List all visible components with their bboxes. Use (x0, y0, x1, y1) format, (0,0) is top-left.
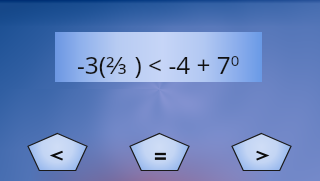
button[interactable]: Less than (28, 133, 87, 171)
button[interactable]: Greater than (232, 133, 291, 171)
button[interactable]: Equals (130, 133, 189, 171)
staticText: -3(⅔ ) < -4 + 70 (77, 48, 240, 81)
